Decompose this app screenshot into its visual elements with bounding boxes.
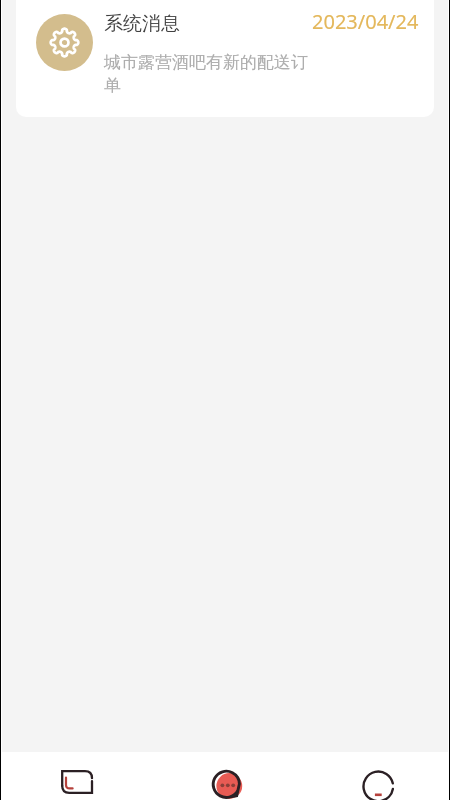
button[interactable]: Profile bbox=[300, 752, 450, 800]
staticText: 系统消息 bbox=[104, 12, 180, 36]
button[interactable]: Messages bbox=[150, 752, 300, 800]
button[interactable]: 系统消息 bbox=[16, 0, 434, 117]
staticText: 城市露营酒吧有新的配送订单 bbox=[104, 52, 309, 96]
button[interactable]: Orders bbox=[0, 752, 150, 800]
staticText: 2023/04/24 bbox=[312, 8, 419, 35]
